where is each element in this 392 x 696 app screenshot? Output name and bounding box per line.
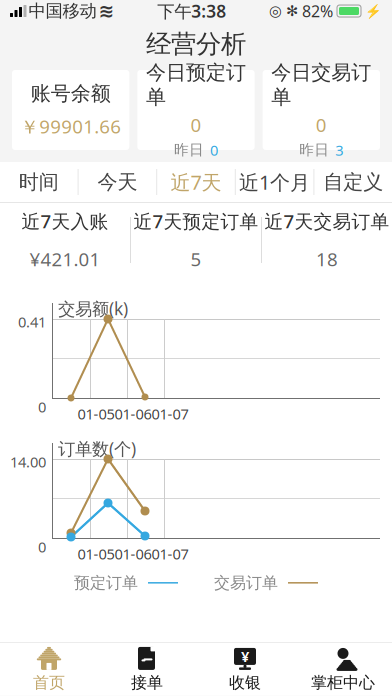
staticText: 收银 bbox=[229, 673, 261, 693]
staticText: 交易订单 bbox=[214, 573, 278, 593]
staticText: 0 bbox=[190, 112, 201, 137]
staticText: 14.00 bbox=[10, 452, 46, 471]
staticText: 近7天交易订单 bbox=[264, 209, 389, 233]
staticText: 01-05 bbox=[77, 544, 114, 563]
staticText: 01-07 bbox=[151, 404, 188, 423]
staticText: ⚡ bbox=[365, 3, 382, 19]
button[interactable]: 接单 bbox=[98, 642, 196, 696]
staticText: 经营分析 bbox=[146, 28, 246, 59]
staticText: 昨日 bbox=[174, 141, 204, 159]
button[interactable]: 掌柜中心 bbox=[294, 642, 392, 696]
button[interactable]: 首页 bbox=[0, 642, 98, 696]
staticText: ✻ bbox=[286, 3, 298, 19]
button[interactable]: 今日交易订单 bbox=[263, 70, 380, 150]
button[interactable]: 今日预定订单 bbox=[137, 70, 255, 150]
staticText: ≋ bbox=[98, 0, 114, 22]
staticText: 预定订单 bbox=[74, 573, 138, 593]
staticText: 近7天入账 bbox=[21, 209, 108, 233]
staticText: 0 bbox=[316, 112, 327, 137]
staticText: ◎ bbox=[269, 3, 282, 19]
staticText: 18 bbox=[316, 246, 338, 271]
staticText: 0 bbox=[38, 537, 46, 556]
staticText: 01-06 bbox=[114, 544, 151, 563]
staticText: 交易额(k) bbox=[58, 297, 128, 320]
staticText: 近1个月 bbox=[239, 169, 310, 195]
staticText: 01-05 bbox=[77, 404, 114, 423]
button[interactable]: 自定义 bbox=[314, 162, 392, 202]
staticText: 账号余额 bbox=[31, 81, 111, 106]
staticText: 82% bbox=[302, 0, 333, 22]
staticText: 昨日 bbox=[299, 141, 329, 159]
staticText: ￥99901.66 bbox=[20, 114, 121, 139]
staticText: 今日预定订单 bbox=[146, 60, 246, 109]
button[interactable]: 时间 bbox=[0, 162, 78, 202]
staticText: 今天 bbox=[97, 170, 137, 194]
button[interactable]: 今天 bbox=[79, 162, 156, 202]
button[interactable]: 账号余额 bbox=[12, 70, 129, 150]
staticText: 01-07 bbox=[151, 544, 188, 563]
staticText: 0 bbox=[38, 397, 46, 416]
staticText: 时间 bbox=[19, 170, 59, 194]
staticText: 自定义 bbox=[323, 170, 383, 194]
staticText: 0 bbox=[210, 140, 218, 160]
button[interactable]: 近1个月 bbox=[236, 162, 313, 202]
staticText: 0.41 bbox=[18, 312, 46, 331]
button[interactable]: ¥ bbox=[196, 642, 294, 696]
staticText: 订单数(个) bbox=[58, 437, 136, 460]
staticText: 5 bbox=[190, 246, 201, 271]
staticText: 中国移动 bbox=[28, 0, 96, 22]
staticText: 首页 bbox=[33, 673, 65, 693]
staticText: 近7天 bbox=[170, 169, 221, 195]
button[interactable]: 近7天 bbox=[157, 162, 235, 202]
staticText: 近7天预定订单 bbox=[133, 209, 258, 233]
staticText: 01-06 bbox=[114, 404, 151, 423]
staticText: 今日交易订单 bbox=[271, 60, 371, 109]
staticText: 3 bbox=[335, 140, 343, 160]
staticText: ¥421.01 bbox=[29, 246, 100, 271]
staticText: 接单 bbox=[131, 673, 163, 693]
staticText: ¥ bbox=[241, 647, 249, 666]
staticText: 掌柜中心 bbox=[311, 673, 375, 693]
staticText: 下午3:38 bbox=[157, 0, 226, 22]
